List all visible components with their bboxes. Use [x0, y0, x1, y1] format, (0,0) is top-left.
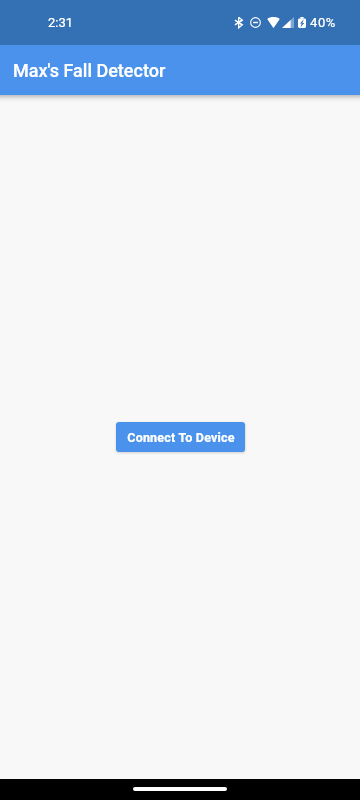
- button[interactable]: Connect To Device: [116, 422, 245, 452]
- staticText: Max's Fall Detector: [13, 60, 166, 81]
- staticText: 40%: [310, 15, 336, 30]
- staticText: Connect To Device: [127, 430, 235, 445]
- other: Home gesture bar: [0, 779, 360, 800]
- staticText: 2:31: [48, 15, 74, 30]
